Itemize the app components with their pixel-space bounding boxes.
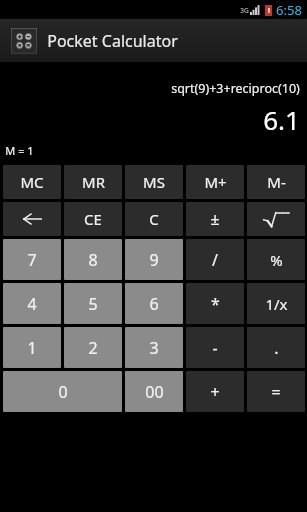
staticText: Pocket Calculator <box>47 30 178 52</box>
staticText: + <box>210 381 220 403</box>
button[interactable]: C <box>125 202 183 236</box>
button[interactable]: = <box>247 371 305 412</box>
staticText: % <box>270 250 283 270</box>
staticText: ± <box>210 208 220 230</box>
button[interactable]: 00 <box>125 371 183 412</box>
button[interactable]: / <box>186 239 244 280</box>
staticText: MS <box>143 172 165 192</box>
staticText: 3G <box>240 6 249 15</box>
staticText: / <box>212 249 218 271</box>
staticText: MC <box>20 172 44 192</box>
button[interactable]: + <box>186 371 244 412</box>
button[interactable]: - <box>186 327 244 368</box>
staticText: M = 1 <box>5 143 34 158</box>
button[interactable]: 0 <box>3 371 122 412</box>
button[interactable]: 5 <box>64 283 122 324</box>
button[interactable]: . <box>247 327 305 368</box>
button[interactable]: 6 <box>125 283 183 324</box>
staticText: - <box>212 337 218 359</box>
staticText: 00 <box>145 381 164 403</box>
staticText: 1 <box>27 337 37 359</box>
staticText: 0 <box>58 381 68 403</box>
staticText: 6.1 <box>263 102 300 137</box>
button[interactable]: 4 <box>3 283 61 324</box>
button[interactable]: 3 <box>125 327 183 368</box>
staticText: M- <box>267 172 286 192</box>
staticText: 8 <box>88 249 98 271</box>
button[interactable]: Square root <box>247 202 305 236</box>
button[interactable]: 7 <box>3 239 61 280</box>
staticText: 7 <box>27 249 37 271</box>
staticText: . <box>274 337 279 359</box>
button[interactable]: % <box>247 239 305 280</box>
staticText: * <box>211 293 220 315</box>
staticText: sqrt(9)+3+reciproc(10) <box>171 80 300 97</box>
button[interactable]: ± <box>186 202 244 236</box>
button[interactable]: M- <box>247 165 305 199</box>
button[interactable]: MC <box>3 165 61 199</box>
button[interactable]: 1 <box>3 327 61 368</box>
button[interactable]: CE <box>64 202 122 236</box>
button[interactable]: * <box>186 283 244 324</box>
staticText: 6 <box>149 293 159 315</box>
staticText: = <box>271 381 281 403</box>
button[interactable]: 9 <box>125 239 183 280</box>
staticText: CE <box>84 209 102 229</box>
staticText: C <box>149 209 159 229</box>
button[interactable]: 2 <box>64 327 122 368</box>
staticText: 4 <box>27 293 37 315</box>
button[interactable]: MR <box>64 165 122 199</box>
button[interactable]: Backspace <box>3 202 61 236</box>
button[interactable]: M+ <box>186 165 244 199</box>
staticText: ! <box>268 6 270 16</box>
staticText: 9 <box>149 249 159 271</box>
button[interactable]: MS <box>125 165 183 199</box>
button[interactable]: 1/x <box>247 283 305 324</box>
staticText: M+ <box>204 172 227 192</box>
staticText: 5 <box>88 293 98 315</box>
staticText: 1/x <box>265 294 288 314</box>
staticText: 2 <box>88 337 98 359</box>
staticText: MR <box>82 172 105 192</box>
staticText: 6:58 <box>276 1 302 19</box>
staticText: 3 <box>149 337 159 359</box>
button[interactable]: 8 <box>64 239 122 280</box>
